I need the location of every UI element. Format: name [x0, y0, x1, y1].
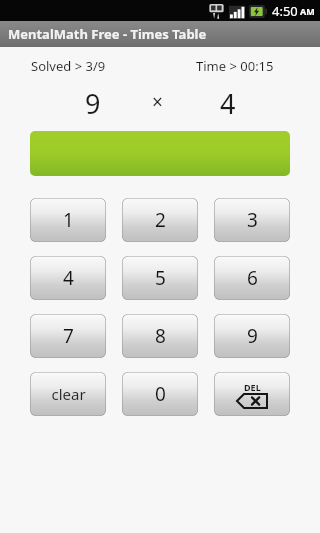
staticText: 4:50 — [272, 2, 298, 20]
button[interactable]: Delete — [214, 372, 290, 416]
staticText: Time > 00:15 — [196, 57, 274, 75]
staticText: Solved > 3/9 — [31, 57, 106, 75]
staticText: 0 — [155, 381, 166, 407]
staticText: AM — [300, 5, 315, 17]
staticText: 3 — [247, 207, 258, 233]
staticText: × — [152, 89, 163, 115]
button[interactable]: 4 — [30, 256, 106, 300]
button[interactable]: 0 — [122, 372, 198, 416]
staticText: 1 — [63, 207, 74, 233]
staticText: MentalMath Free - Times Table — [8, 25, 207, 43]
button[interactable]: clear — [30, 372, 106, 416]
button[interactable]: 6 — [214, 256, 290, 300]
staticText: 5 — [155, 265, 166, 291]
button[interactable]: 3 — [214, 198, 290, 242]
button[interactable]: 1 — [30, 198, 106, 242]
staticText: 9 — [85, 85, 101, 119]
staticText: 9 — [247, 323, 258, 349]
staticText: 4 — [220, 85, 236, 119]
button[interactable]: 9 — [214, 314, 290, 358]
staticText: 7 — [63, 323, 74, 349]
staticText: 6 — [247, 265, 258, 291]
button[interactable]: 2 — [122, 198, 198, 242]
button[interactable]: 8 — [122, 314, 198, 358]
staticText: 2 — [155, 207, 166, 233]
staticText: DEL — [244, 381, 261, 393]
staticText: 8 — [155, 323, 166, 349]
button[interactable]: 7 — [30, 314, 106, 358]
button[interactable]: 5 — [122, 256, 198, 300]
staticText: 4 — [63, 265, 74, 291]
button[interactable] — [30, 131, 290, 176]
staticText: clear — [51, 384, 86, 404]
